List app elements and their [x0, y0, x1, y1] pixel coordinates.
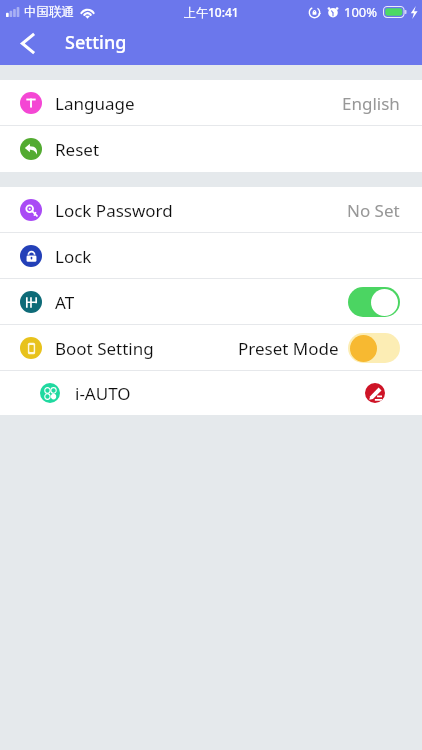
staticText: 上午10:41: [184, 4, 239, 20]
staticText: Language: [55, 92, 135, 115]
button[interactable]: Boot Setting: [0, 325, 422, 371]
staticText: i-AUTO: [75, 382, 131, 405]
staticText: Setting: [65, 30, 127, 55]
staticText: Preset Mode: [238, 337, 339, 360]
button[interactable]: Lock Password: [0, 187, 422, 233]
staticText: Lock Password: [55, 199, 173, 222]
staticText: 中国联通: [24, 4, 74, 20]
button[interactable]: i-AUTO: [0, 371, 422, 415]
staticText: No Set: [347, 199, 400, 222]
staticText: Reset: [55, 138, 100, 161]
button[interactable]: AT: [0, 279, 422, 325]
button[interactable]: Language: [0, 80, 422, 126]
button[interactable]: Edit: [365, 383, 385, 403]
staticText: English: [342, 92, 400, 115]
button[interactable]: Lock: [0, 233, 422, 279]
button[interactable]: Reset: [0, 126, 422, 172]
staticText: 100%: [344, 3, 378, 21]
staticText: AT: [55, 291, 75, 314]
button[interactable]: Preset Mode toggle: [348, 333, 400, 363]
button[interactable]: AT toggle: [348, 287, 400, 317]
button[interactable]: Back: [9, 24, 45, 62]
staticText: Lock: [55, 245, 92, 268]
staticText: Boot Setting: [55, 337, 154, 360]
